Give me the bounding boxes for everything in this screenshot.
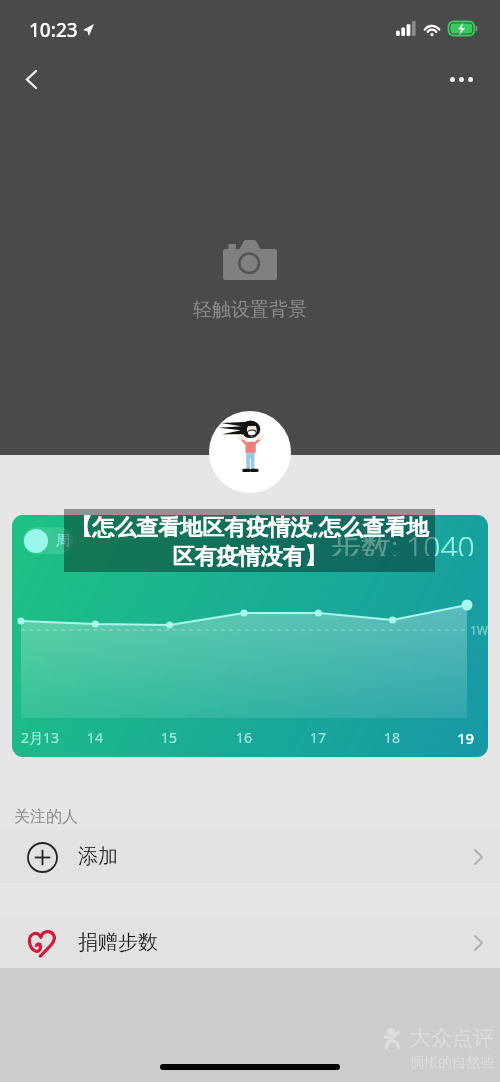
staticText: 大众点评: [410, 1025, 494, 1051]
staticText: 添加: [78, 844, 118, 869]
button[interactable]: More options: [439, 57, 483, 101]
staticText: 捐赠步数: [78, 930, 158, 955]
staticText: 15: [161, 728, 178, 747]
staticText: 关注的人: [14, 807, 78, 827]
staticText: 周: [56, 532, 70, 550]
button[interactable]: 添加: [26, 830, 483, 883]
button[interactable]: 周: [23, 527, 73, 554]
staticText: 18: [384, 728, 401, 747]
staticText: 10:23: [29, 17, 78, 43]
staticText: 惆怅的自然些: [410, 1054, 494, 1072]
button[interactable]: 捐赠步数: [26, 916, 483, 969]
staticText: 14: [87, 728, 104, 747]
staticText: 步数: 1040: [331, 526, 475, 556]
button[interactable]: 周: [12, 515, 488, 757]
staticText: 19: [457, 728, 475, 748]
staticText: 1W: [470, 622, 488, 638]
staticText: 2月13: [21, 728, 60, 747]
staticText: 【怎么查看地区有疫情没,怎么查看地 区有疫情没有】: [70, 511, 429, 571]
staticText: 16: [236, 728, 253, 747]
button[interactable]: Back: [9, 57, 53, 101]
button[interactable]: [209, 411, 291, 493]
staticText: 17: [310, 728, 327, 747]
staticText: 轻触设置背景: [193, 298, 307, 322]
